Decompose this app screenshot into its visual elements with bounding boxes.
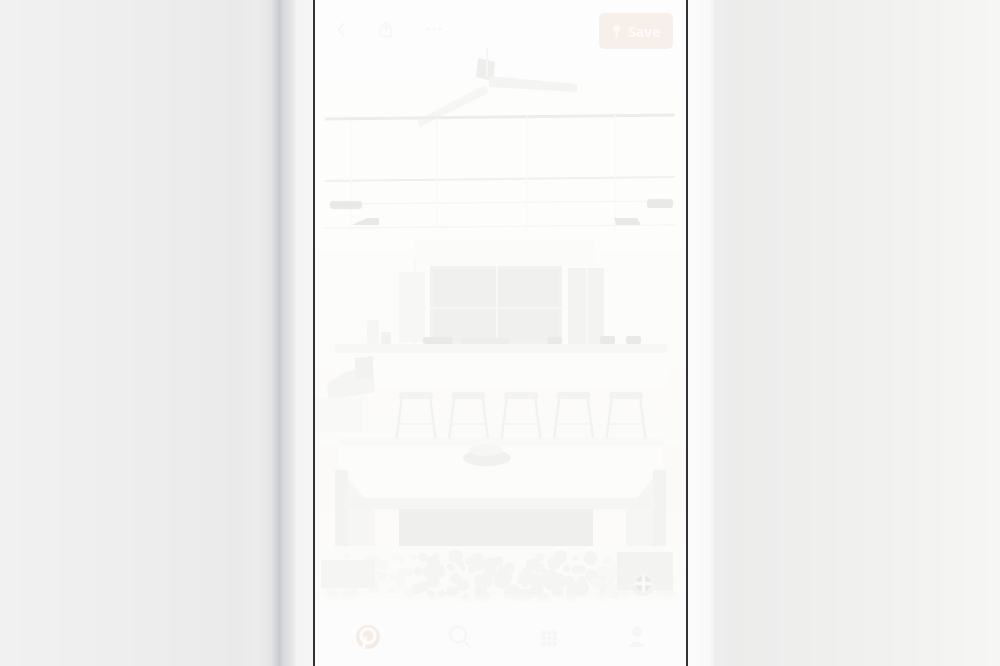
button[interactable]: Visual search <box>630 570 656 596</box>
staticText: Save <box>628 22 661 41</box>
button[interactable]: Save <box>599 13 673 49</box>
button[interactable]: Home <box>356 611 380 663</box>
